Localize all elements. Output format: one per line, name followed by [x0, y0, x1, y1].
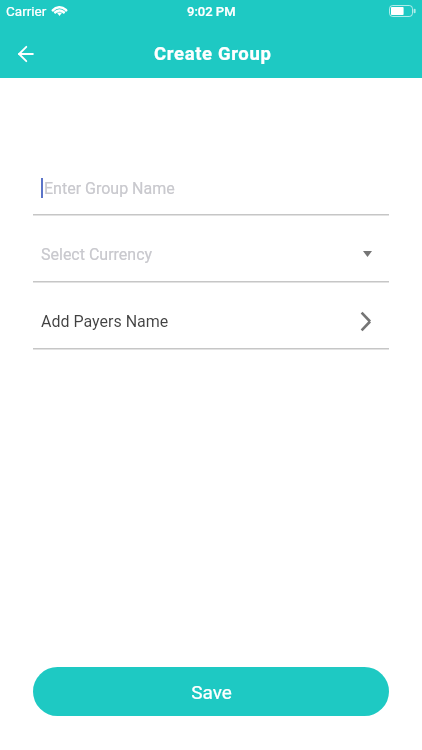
staticText: Create Group: [154, 43, 272, 65]
staticText: Add Payers Name: [41, 312, 169, 331]
staticText: Carrier: [6, 3, 47, 19]
button[interactable]: Select Currency: [33, 233, 389, 281]
staticText: Enter Group Name: [44, 179, 175, 198]
button[interactable]: Add Payers Name: [33, 300, 389, 348]
button[interactable]: Save: [33, 667, 389, 716]
staticText: Select Currency: [41, 245, 153, 264]
staticText: Save: [191, 681, 232, 703]
button[interactable]: Back: [4, 32, 48, 76]
button[interactable]: Enter Group Name: [33, 166, 389, 214]
staticText: 9:02 PM: [187, 4, 236, 19]
